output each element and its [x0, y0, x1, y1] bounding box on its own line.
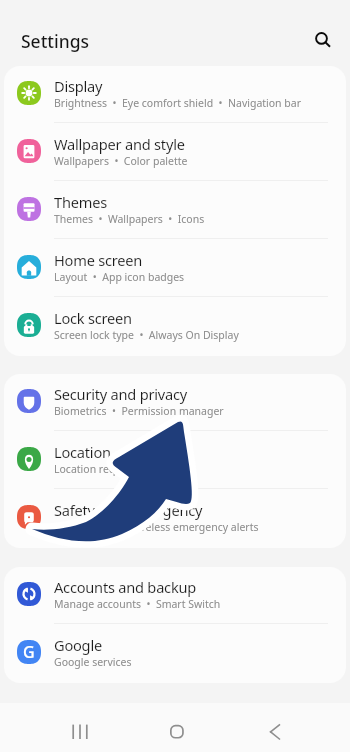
staticText: Home screen	[54, 250, 143, 270]
staticText: Safety and emergency	[54, 500, 203, 520]
staticText: Wallpapers • Color palette	[54, 154, 188, 168]
button[interactable]: Lock screen	[4, 298, 346, 356]
staticText: Layout • App icon badges	[54, 270, 185, 284]
button[interactable]: Location	[4, 432, 346, 490]
button[interactable]: Back	[251, 708, 299, 752]
button[interactable]: Recent apps	[56, 708, 104, 752]
staticText: Screen lock type • Always On Display	[54, 328, 239, 342]
staticText: Wallpaper and style	[54, 134, 185, 154]
button[interactable]: Themes	[4, 182, 346, 240]
button[interactable]: Security and privacy	[4, 374, 346, 432]
staticText: Display	[54, 76, 103, 96]
button[interactable]: Safety and emergency	[4, 490, 346, 548]
staticText: Google	[54, 635, 102, 655]
staticText: Manage accounts • Smart Switch	[54, 597, 221, 611]
staticText: Biometrics • Permission manager	[54, 404, 224, 418]
staticText: Settings	[21, 29, 90, 53]
button[interactable]: Accounts and backup	[4, 567, 346, 625]
staticText: Medical info • Wireless emergency alerts	[54, 520, 259, 534]
button[interactable]: Home screen	[4, 240, 346, 298]
staticText: G	[23, 641, 35, 663]
button[interactable]: Wallpaper and style	[4, 124, 346, 182]
staticText: Themes • Wallpapers • Icons	[54, 212, 205, 226]
staticText: Accounts and backup	[54, 577, 197, 597]
staticText: Lock screen	[54, 308, 132, 328]
button[interactable]: Search	[305, 20, 345, 60]
button[interactable]: Display	[4, 66, 346, 124]
staticText: Location requests	[54, 462, 142, 476]
staticText: Security and privacy	[54, 384, 187, 404]
button[interactable]: Home	[153, 708, 201, 752]
staticText: Location	[54, 442, 111, 462]
staticText: Themes	[54, 192, 107, 212]
staticText: Google services	[54, 655, 132, 669]
staticText: Brightness • Eye comfort shield • Naviga…	[54, 96, 302, 110]
button[interactable]: G	[4, 625, 346, 683]
